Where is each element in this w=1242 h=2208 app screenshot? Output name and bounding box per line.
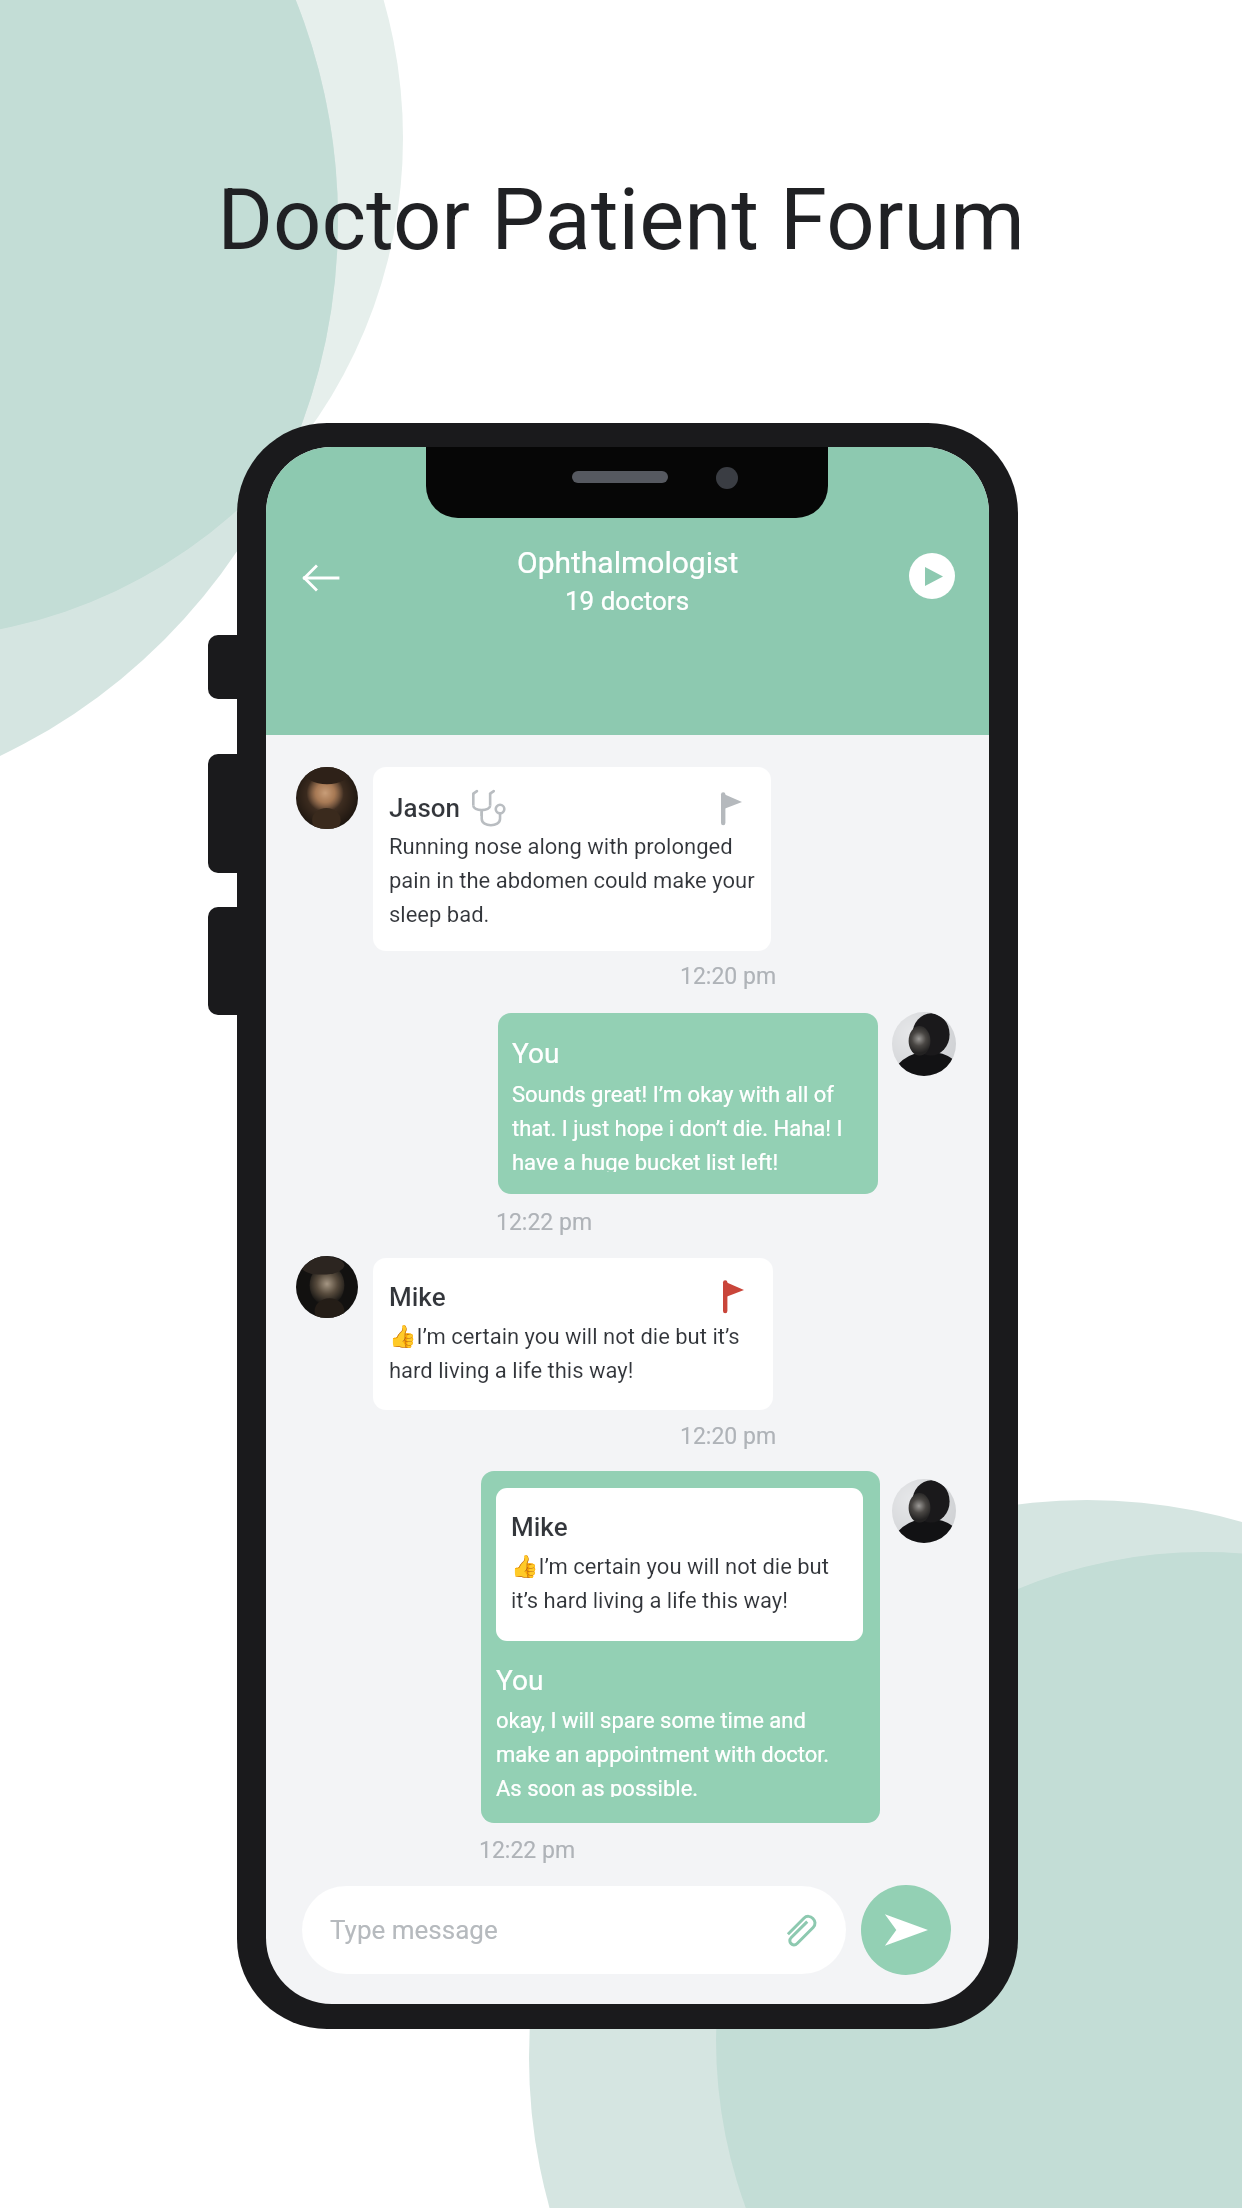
staticText: 12:20 pm [680,1423,777,1450]
button[interactable]: Mike [373,1258,773,1410]
staticText: 👍I’m certain you will not die but it’s h… [389,1324,757,1383]
staticText: You [512,1037,560,1070]
button[interactable]: Send message [861,1885,951,1975]
staticText: Mike [511,1512,568,1542]
button[interactable]: Attach file [770,1902,826,1958]
staticText: You [496,1664,544,1697]
button[interactable]: Back [290,547,350,608]
button[interactable]: Type message [302,1886,846,1974]
staticText: Type message [330,1915,498,1945]
button[interactable]: Mike [481,1471,880,1823]
staticText: 👍I’m certain you will not die but it’s h… [511,1554,849,1613]
staticText: Sounds great! I’m okay with all of that.… [512,1082,864,1172]
staticText: 12:22 pm [496,1209,593,1236]
staticText: Mike [389,1282,446,1312]
button[interactable]: Jason [373,767,771,951]
button[interactable]: You [498,1013,878,1194]
staticText: Jason [389,793,461,823]
staticText: okay, I will spare some time and make an… [496,1708,836,1797]
staticText: Ophthalmologist [517,545,739,580]
staticText: Running nose along with prolonged pain i… [389,834,755,927]
staticText: 12:22 pm [479,1837,576,1864]
staticText: Doctor Patient Forum [0,170,1242,270]
staticText: 19 doctors [565,586,690,616]
button[interactable]: Play video [909,553,955,599]
staticText: 12:20 pm [680,963,777,990]
